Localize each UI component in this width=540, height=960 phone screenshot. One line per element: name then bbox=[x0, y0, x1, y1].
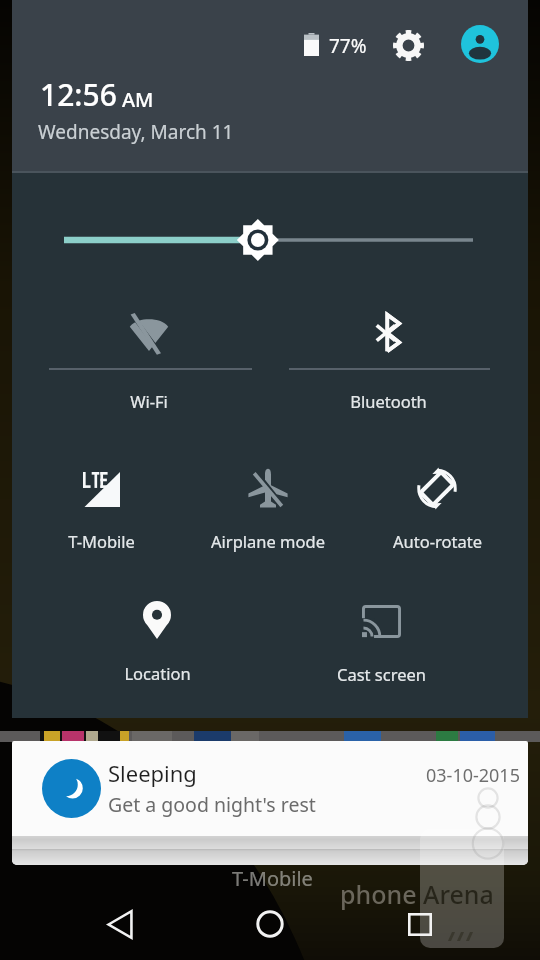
button[interactable]: Airplane mode bbox=[184, 458, 352, 552]
staticText: Get a good night's rest bbox=[108, 791, 316, 818]
button[interactable]: Recent apps bbox=[380, 890, 460, 958]
staticText: Wednesday, March 11 bbox=[38, 119, 234, 145]
button[interactable]: Home bbox=[230, 890, 310, 958]
button[interactable]: Cast screen bbox=[297, 595, 465, 685]
staticText: phone bbox=[340, 877, 417, 911]
button[interactable]: Settings bbox=[385, 22, 431, 68]
button[interactable]: Bluetooth bbox=[304, 304, 472, 412]
staticText: 77% bbox=[329, 33, 367, 59]
staticText: 12:56 bbox=[40, 74, 117, 115]
button[interactable]: Brightness bbox=[52, 218, 488, 262]
button[interactable]: Sleeping bbox=[12, 741, 528, 836]
staticText: T-Mobile bbox=[232, 865, 313, 892]
staticText: Airplane mode bbox=[211, 530, 325, 552]
staticText: T-Mobile bbox=[68, 530, 135, 552]
staticText: 03-10-2015 bbox=[426, 763, 520, 788]
staticText: Auto-rotate bbox=[393, 530, 482, 552]
button[interactable]: Wi-Fi bbox=[65, 303, 233, 412]
staticText: Cast screen bbox=[337, 663, 426, 685]
staticText: Bluetooth bbox=[350, 390, 427, 412]
button[interactable]: Location bbox=[73, 591, 241, 684]
staticText: Sleeping bbox=[108, 758, 197, 788]
button[interactable]: Auto-rotate bbox=[353, 456, 521, 552]
staticText: Arena bbox=[423, 877, 494, 911]
staticText: AM bbox=[122, 86, 154, 113]
button[interactable]: User profile bbox=[461, 25, 499, 63]
staticText: Location bbox=[124, 662, 191, 684]
button[interactable]: Back bbox=[80, 890, 160, 958]
button[interactable]: Battery 77 percent bbox=[304, 32, 334, 58]
button[interactable]: T-Mobile bbox=[17, 462, 185, 552]
staticText: Wi-Fi bbox=[130, 390, 168, 412]
